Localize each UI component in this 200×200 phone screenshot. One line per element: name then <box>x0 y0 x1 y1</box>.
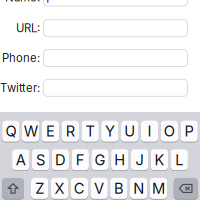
staticText: K <box>154 151 164 169</box>
staticText: S <box>36 151 45 169</box>
button[interactable]: H <box>111 149 128 171</box>
button[interactable]: W <box>22 120 39 142</box>
staticText: Z <box>35 179 44 197</box>
staticText: P <box>185 122 194 140</box>
staticText: H <box>114 151 125 169</box>
staticText: B <box>114 179 124 197</box>
button[interactable]: Z <box>31 177 48 200</box>
button[interactable]: G <box>91 149 109 171</box>
button[interactable]: J <box>131 149 148 171</box>
staticText: U <box>124 122 135 140</box>
button[interactable]: V <box>90 177 108 200</box>
staticText: D <box>55 151 66 169</box>
staticText: URL: <box>16 21 40 35</box>
staticText: J <box>136 151 144 169</box>
staticText: N <box>133 179 144 197</box>
button[interactable]: T <box>81 120 99 142</box>
button[interactable]: B <box>110 177 128 200</box>
button[interactable]: I <box>141 120 158 142</box>
staticText: X <box>54 179 64 197</box>
staticText: R <box>66 122 75 140</box>
button[interactable]: D <box>52 149 69 171</box>
staticText: C <box>74 179 85 197</box>
button[interactable]: O <box>161 120 178 142</box>
staticText: G <box>94 151 105 169</box>
button[interactable]: U <box>121 120 138 142</box>
button[interactable]: A <box>12 149 29 171</box>
button[interactable]: M <box>150 177 167 200</box>
button[interactable]: F <box>71 149 89 171</box>
button[interactable]: S <box>32 149 49 171</box>
button[interactable]: L <box>170 149 188 171</box>
button[interactable]: Q <box>2 120 20 142</box>
staticText: A <box>16 151 26 169</box>
button[interactable]: P <box>180 120 198 142</box>
button[interactable]: N <box>130 177 147 200</box>
button[interactable]: Y <box>101 120 119 142</box>
button[interactable]: X <box>51 177 68 200</box>
staticText: F <box>76 151 85 169</box>
staticText: I <box>147 122 151 140</box>
button[interactable]: C <box>71 177 88 200</box>
button[interactable]: K <box>151 149 168 171</box>
staticText: T <box>86 122 95 140</box>
staticText: Twitter: <box>0 81 40 95</box>
staticText: E <box>46 122 55 140</box>
staticText: Phone: <box>2 51 40 65</box>
button[interactable]: R <box>62 120 79 142</box>
staticText: M <box>152 179 165 197</box>
staticText: V <box>94 179 104 197</box>
staticText: L <box>175 151 183 169</box>
button[interactable]: E <box>42 120 59 142</box>
staticText: Name: <box>5 0 40 4</box>
staticText: W <box>24 122 38 140</box>
button[interactable]: Shift <box>2 177 24 200</box>
staticText: Y <box>105 122 115 140</box>
staticText: O <box>164 122 175 140</box>
staticText: Q <box>5 122 16 140</box>
button[interactable]: Delete <box>174 177 198 200</box>
